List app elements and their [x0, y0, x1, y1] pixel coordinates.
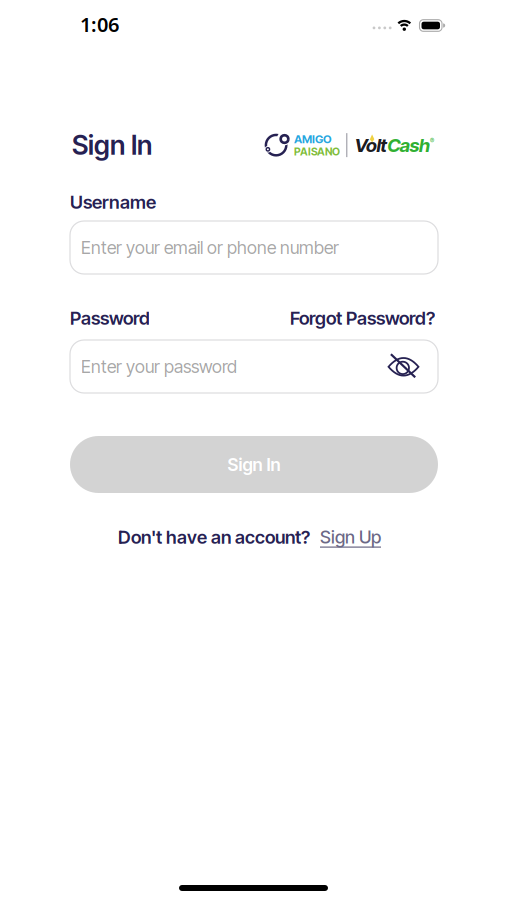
staticText: Don't have an account? [118, 526, 310, 548]
button[interactable]: Enter your email or phone number [70, 221, 438, 274]
staticText: PAISANO [294, 145, 340, 158]
staticText: AMIGO [294, 132, 332, 146]
button[interactable]: Show password [388, 354, 426, 379]
button[interactable]: Forgot Password? [290, 307, 435, 329]
staticText: Enter your email or phone number [81, 237, 339, 258]
staticText: Password [70, 307, 150, 329]
staticText: 1:06 [80, 11, 119, 38]
staticText: Enter your password [81, 356, 237, 377]
staticText: Sign Up [320, 526, 381, 548]
button[interactable]: Sign Up [320, 526, 381, 548]
staticText: ® [430, 137, 434, 145]
staticText: Sign In [227, 454, 280, 475]
button[interactable]: Enter your password [70, 340, 438, 393]
staticText: Sign In [72, 129, 152, 161]
staticText: Volt [354, 134, 387, 156]
staticText: Cash [387, 134, 430, 156]
staticText: Username [70, 191, 156, 213]
button[interactable]: Sign In [70, 436, 438, 493]
staticText: Forgot Password? [290, 307, 435, 329]
